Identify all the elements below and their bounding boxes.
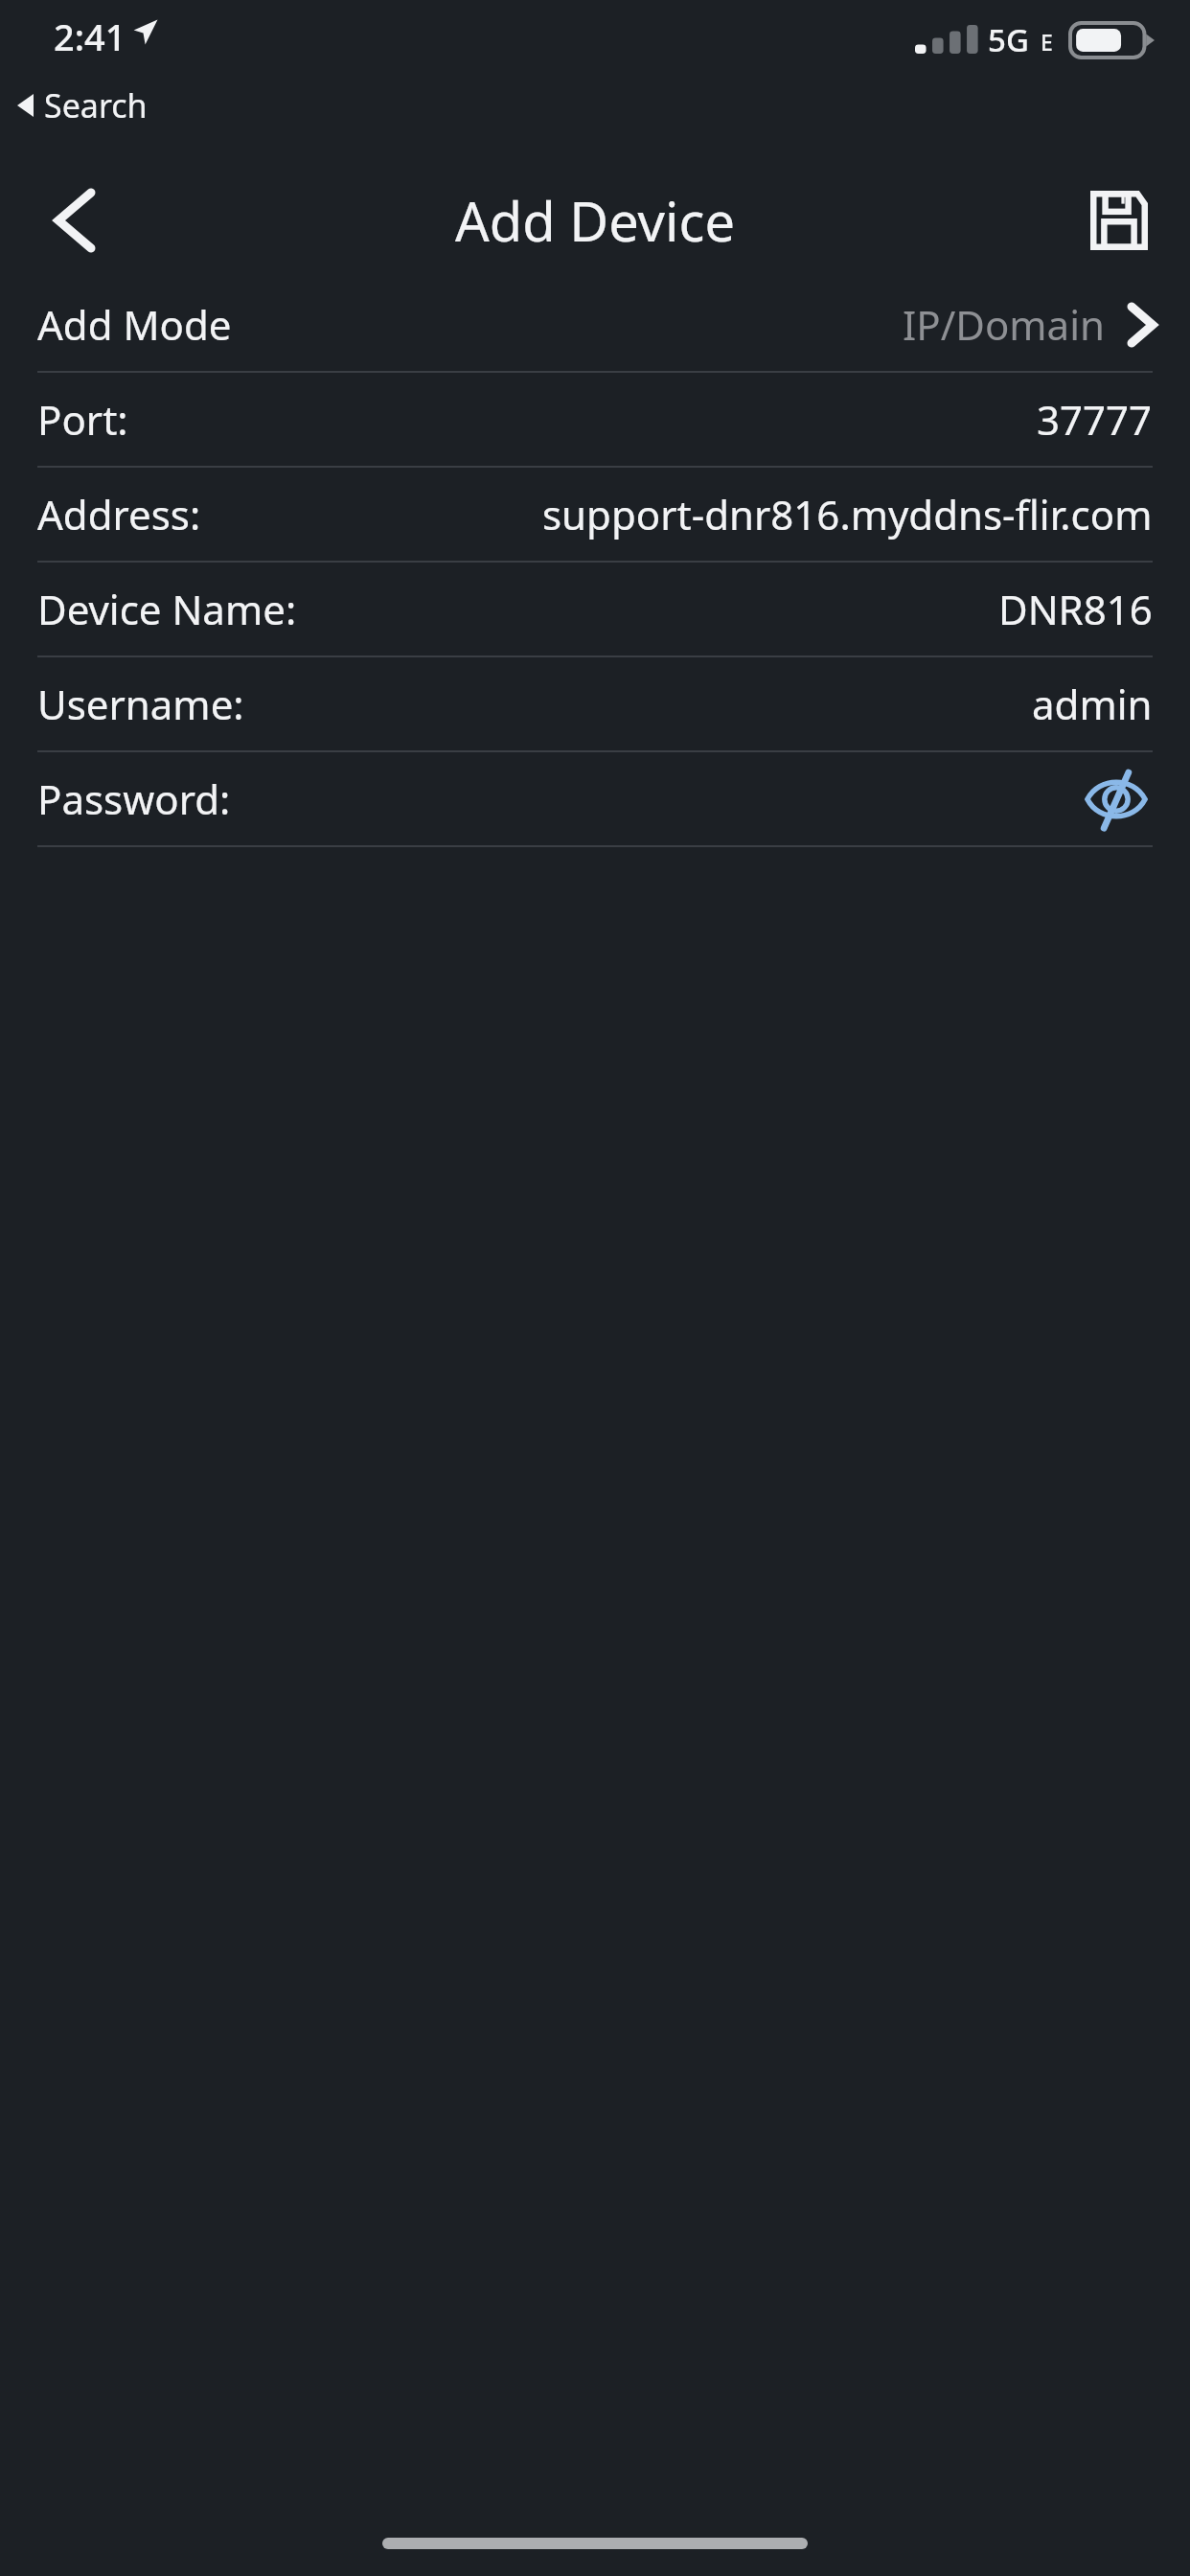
button[interactable]: Address: bbox=[0, 468, 1190, 561]
staticText: E bbox=[1041, 27, 1053, 57]
staticText: Password: bbox=[37, 771, 231, 826]
staticText: Username: bbox=[37, 677, 244, 731]
button[interactable]: Search bbox=[17, 80, 148, 130]
button[interactable]: Port: bbox=[0, 373, 1190, 466]
staticText: 5G bbox=[988, 18, 1029, 61]
staticText: Device Name: bbox=[37, 582, 297, 636]
staticText: Address: bbox=[37, 487, 201, 541]
button[interactable]: Show password bbox=[1080, 763, 1153, 836]
staticText: Add Device bbox=[455, 184, 735, 257]
button[interactable]: Device Name: bbox=[0, 563, 1190, 655]
staticText: 2:41 bbox=[54, 11, 126, 61]
staticText: Search bbox=[44, 83, 148, 127]
button[interactable]: Password: bbox=[0, 752, 1190, 845]
staticText: support-dnr816.myddns-flir.com bbox=[542, 487, 1153, 541]
button[interactable]: Save bbox=[1075, 176, 1163, 264]
button[interactable]: Add Mode bbox=[0, 278, 1190, 371]
staticText: 37777 bbox=[1037, 392, 1153, 447]
staticText: admin bbox=[1032, 677, 1153, 731]
button[interactable]: Back bbox=[34, 180, 115, 261]
button[interactable]: Username: bbox=[0, 657, 1190, 750]
staticText: Port: bbox=[37, 392, 128, 447]
staticText: DNR816 bbox=[998, 582, 1153, 636]
staticText: IP/Domain bbox=[903, 297, 1105, 352]
staticText: Add Mode bbox=[37, 297, 232, 352]
